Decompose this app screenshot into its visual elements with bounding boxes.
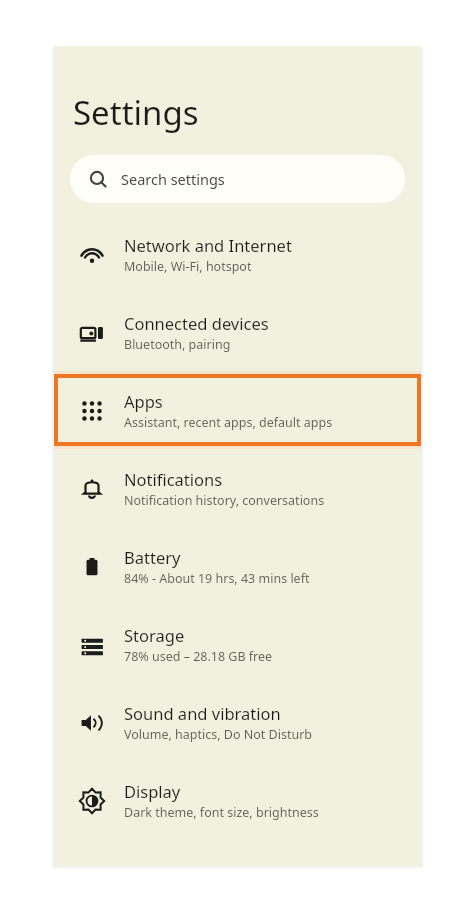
staticText: Bluetooth, pairing	[124, 336, 231, 353]
staticText: Network and Internet	[124, 234, 292, 256]
staticText: Assistant, recent apps, default apps	[124, 414, 333, 431]
staticText: Mobile, Wi-Fi, hotspot	[124, 258, 252, 275]
staticText: Sound and vibration	[124, 702, 281, 724]
staticText: Storage	[124, 624, 185, 646]
staticText: Settings	[73, 90, 199, 135]
staticText: Connected devices	[124, 312, 269, 334]
button[interactable]: Connected devices	[54, 293, 421, 371]
staticText: 78% used – 28.18 GB free	[124, 648, 273, 665]
staticText: Apps	[124, 390, 163, 412]
button[interactable]: Storage	[54, 605, 421, 683]
staticText: Notification history, conversations	[124, 492, 325, 509]
staticText: Display	[124, 780, 181, 802]
staticText: Dark theme, font size, brightness	[124, 804, 319, 821]
button[interactable]: Apps	[54, 374, 421, 446]
staticText: Volume, haptics, Do Not Disturb	[124, 726, 313, 743]
button[interactable]: Battery	[54, 527, 421, 605]
staticText: Search settings	[121, 169, 225, 189]
button[interactable]: Display	[54, 761, 421, 839]
staticText: Notifications	[124, 468, 223, 490]
button[interactable]: Network and Internet	[54, 215, 421, 293]
button[interactable]: Search settings	[70, 155, 405, 203]
staticText: Battery	[124, 546, 181, 568]
button[interactable]: Sound and vibration	[54, 683, 421, 761]
staticText: 84% - About 19 hrs, 43 mins left	[124, 570, 310, 587]
button[interactable]: Notifications	[54, 449, 421, 527]
